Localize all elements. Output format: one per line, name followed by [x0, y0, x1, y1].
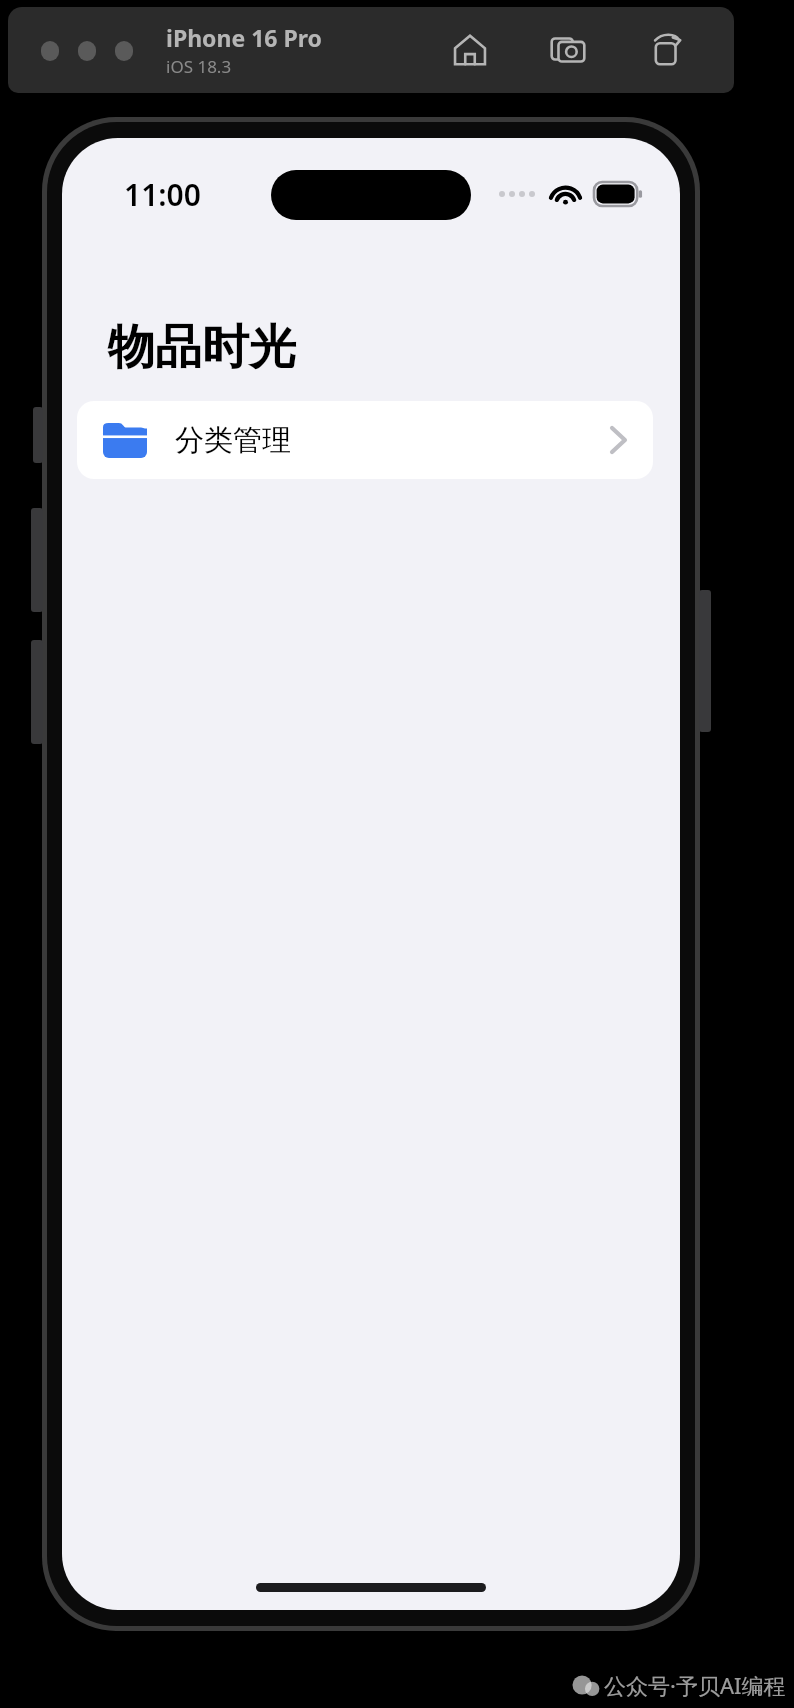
- button[interactable]: [41, 41, 59, 61]
- staticText: 11:00: [124, 174, 201, 215]
- button[interactable]: Screenshot: [546, 28, 590, 72]
- staticText: iOS 18.3: [166, 55, 232, 78]
- staticText: 物品时光: [108, 318, 296, 377]
- button[interactable]: [115, 41, 133, 61]
- button[interactable]: Home: [448, 28, 492, 72]
- staticText: 公众号·予贝AI编程: [604, 1670, 786, 1700]
- staticText: 分类管理: [175, 422, 291, 459]
- button[interactable]: 分类管理: [77, 401, 653, 479]
- staticText: iPhone 16 Pro: [166, 22, 322, 53]
- button[interactable]: Rotate: [644, 28, 688, 72]
- button[interactable]: [78, 41, 96, 61]
